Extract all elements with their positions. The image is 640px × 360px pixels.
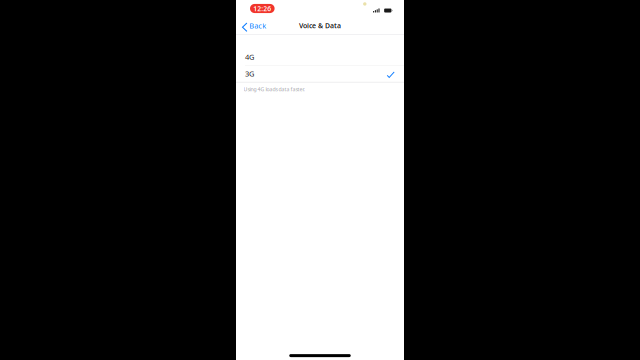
staticText: Voice & Data	[299, 21, 341, 30]
staticText: Using 4G loads data faster.	[244, 86, 305, 93]
button[interactable]: Back	[236, 17, 272, 34]
staticText: 4G	[245, 52, 254, 62]
staticText: 3G	[245, 69, 254, 79]
staticText: Back	[249, 20, 266, 31]
staticText: 12:26	[253, 4, 271, 13]
button[interactable]: 4G	[236, 49, 404, 65]
button[interactable]: 3G	[236, 65, 404, 82]
